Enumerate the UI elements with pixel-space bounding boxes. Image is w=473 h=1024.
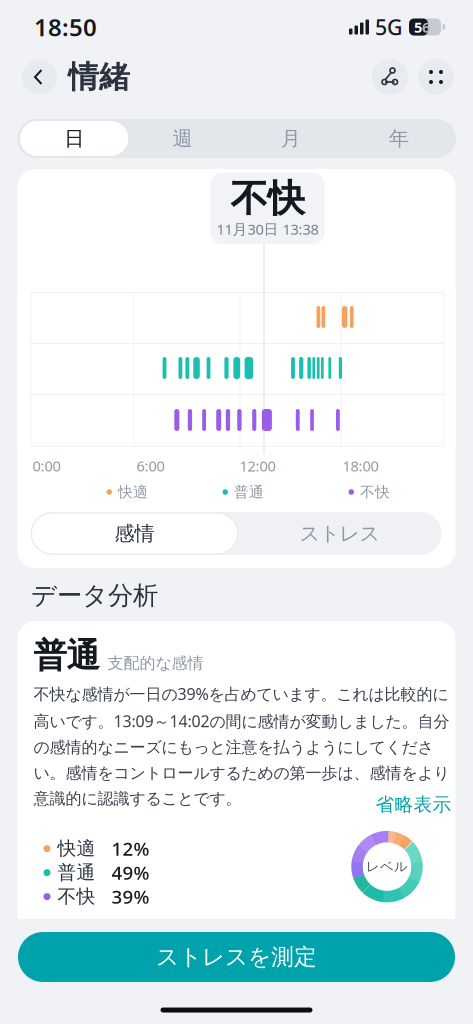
staticText: 6:00	[136, 456, 164, 475]
button[interactable]: 月	[236, 119, 345, 158]
staticText: レベル	[366, 858, 408, 875]
staticText: 普通	[57, 861, 95, 884]
staticText: 快適	[118, 483, 148, 501]
staticText: 年	[389, 126, 409, 151]
staticText: 普通	[33, 635, 99, 676]
staticText: 感情	[114, 521, 154, 546]
staticText: 不快	[360, 483, 390, 501]
button[interactable]: Back	[22, 59, 57, 94]
staticText: 不快	[57, 885, 95, 908]
staticText: 39%	[111, 884, 149, 909]
staticText: 6	[422, 17, 430, 37]
staticText: 不快な感情が一日の39%を占めています。これは比較的に高いです。13:09～14…	[33, 683, 449, 809]
staticText: 49%	[111, 860, 149, 885]
staticText: 12:00	[239, 456, 275, 475]
staticText: 5G	[375, 13, 403, 41]
staticText: ストレスを測定	[156, 943, 317, 971]
staticText: 週	[172, 126, 192, 151]
staticText: 18:00	[342, 456, 378, 475]
staticText: 快適	[57, 837, 95, 860]
staticText: 普通	[234, 483, 264, 501]
button[interactable]: Share	[372, 59, 408, 95]
staticText: 不快	[230, 176, 304, 221]
staticText: データ分析	[31, 580, 158, 611]
button[interactable]: ストレスを測定	[18, 932, 455, 982]
button[interactable]: ストレス	[237, 512, 441, 555]
staticText: ストレス	[299, 521, 379, 546]
staticText: 11月30日 13:38	[216, 219, 318, 239]
staticText: 日	[64, 126, 84, 151]
staticText: 情緒	[68, 58, 130, 96]
button[interactable]: 日	[20, 119, 128, 158]
staticText: 12%	[111, 836, 149, 861]
button[interactable]: 年	[345, 119, 453, 158]
button[interactable]: More options	[418, 59, 454, 95]
staticText: 5	[414, 17, 422, 37]
button[interactable]: 週	[128, 119, 236, 158]
button[interactable]: 省略表示	[375, 793, 451, 816]
staticText: 月	[281, 126, 301, 151]
staticText: 18:50	[34, 11, 97, 43]
staticText: 省略表示	[375, 793, 451, 816]
button[interactable]: 感情	[31, 512, 237, 555]
staticText: 支配的な感情	[107, 653, 203, 673]
staticText: 0:00	[32, 456, 60, 475]
